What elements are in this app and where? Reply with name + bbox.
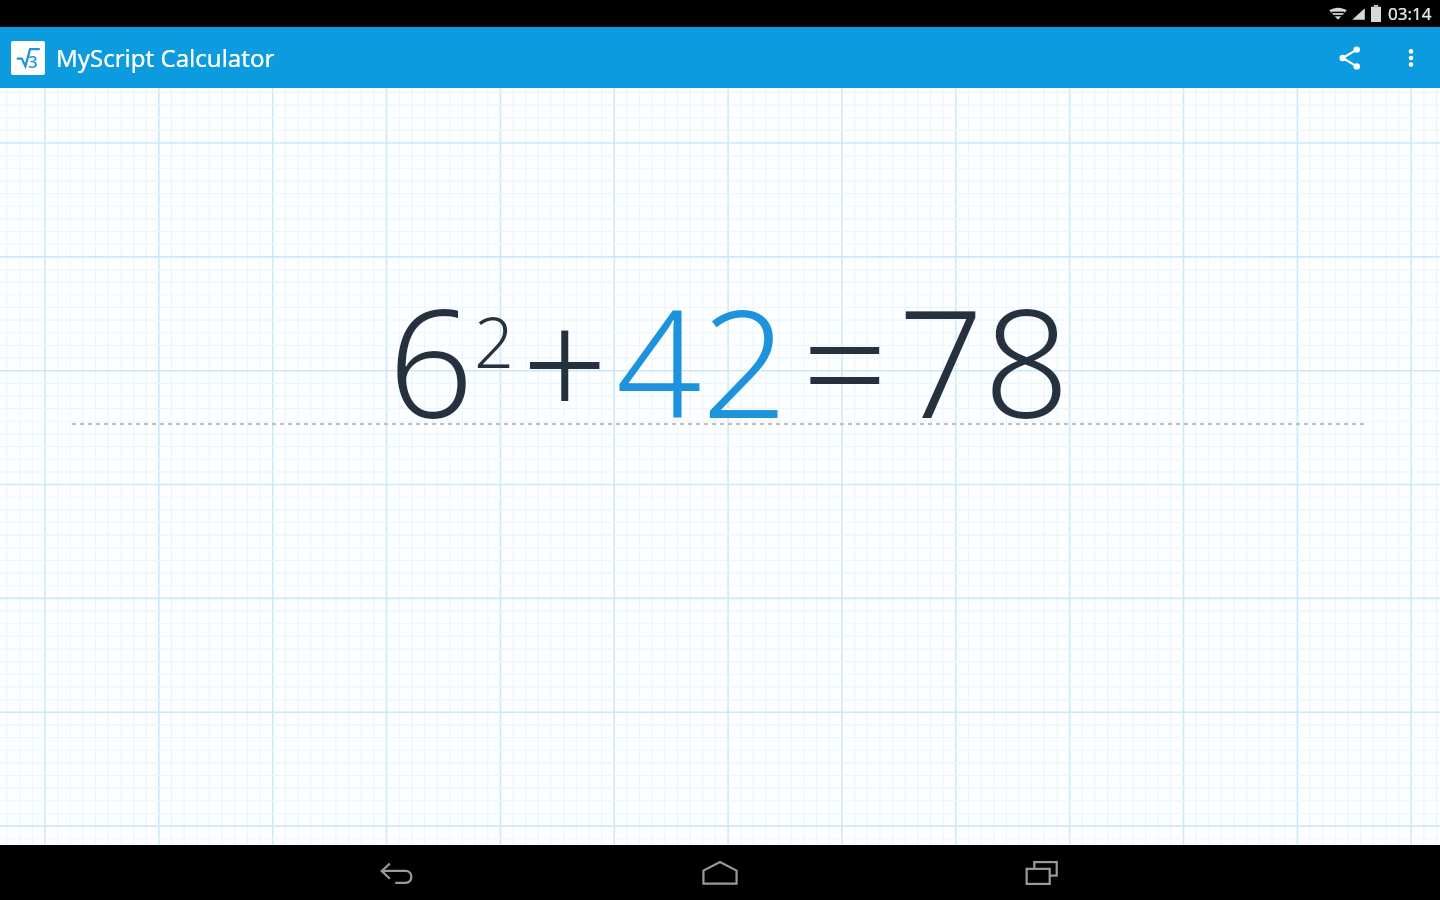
staticText: MyScript Calculator — [56, 41, 275, 74]
staticText: 2 — [474, 293, 514, 388]
button[interactable]: More options — [1382, 27, 1440, 88]
staticText: = — [802, 258, 888, 462]
button[interactable]: Home — [672, 845, 768, 900]
staticText: + — [522, 258, 608, 462]
button[interactable]: Share — [1318, 27, 1382, 88]
staticText: 03:14 — [1388, 2, 1432, 25]
staticText: 42 — [616, 258, 788, 462]
button[interactable]: Back — [350, 845, 446, 900]
staticText: 6 — [388, 258, 474, 462]
button[interactable]: Recent apps — [994, 845, 1090, 900]
staticText: 78 — [898, 258, 1070, 462]
staticText: 3 — [28, 50, 38, 73]
